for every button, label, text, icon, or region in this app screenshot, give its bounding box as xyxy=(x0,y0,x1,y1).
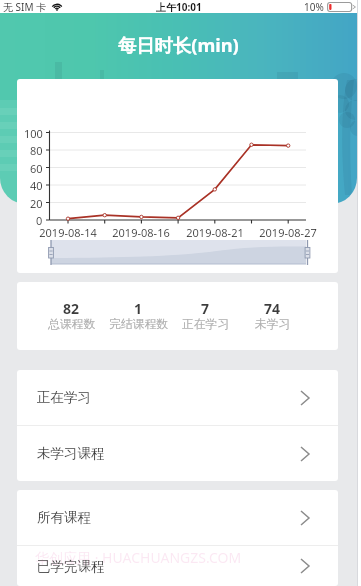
staticText: 每日时长(min) xyxy=(118,32,239,57)
button[interactable]: 正在学习 xyxy=(17,370,338,425)
staticText: 总课程数 xyxy=(48,317,96,332)
staticText: 未学习课程 xyxy=(37,445,105,462)
button[interactable]: 所有课程 xyxy=(17,490,338,545)
staticText: 所有课程 xyxy=(37,509,91,526)
staticText: 已学完课程 xyxy=(37,558,105,575)
staticText: 2019-08-27 xyxy=(259,225,317,240)
button[interactable]: 7 xyxy=(172,299,239,333)
button[interactable]: 未学习课程 xyxy=(17,426,338,481)
staticText: 华创应用 · HUACHUANGZS.COM xyxy=(35,548,242,567)
staticText: 未学习 xyxy=(255,317,291,332)
staticText: 40 xyxy=(30,178,43,193)
staticText: 74 xyxy=(264,299,281,318)
staticText: 0 xyxy=(36,213,43,228)
staticText: 正在学习 xyxy=(37,389,91,406)
button[interactable]: 1 xyxy=(105,299,172,333)
staticText: 2019-08-14 xyxy=(39,225,97,240)
staticText: 上午10:01 xyxy=(156,0,202,13)
staticText: 10% xyxy=(304,0,324,13)
staticText: 20 xyxy=(30,196,43,211)
button[interactable]: 74 xyxy=(239,299,306,333)
staticText: 7 xyxy=(201,299,210,318)
button[interactable]: 82 xyxy=(38,299,105,333)
staticText: 2019-08-16 xyxy=(112,225,170,240)
staticText: 完结课程数 xyxy=(109,317,168,332)
button[interactable]: 已学完课程 xyxy=(17,546,338,586)
staticText: 正在学习 xyxy=(182,317,230,332)
staticText: 80 xyxy=(30,143,43,158)
staticText: 60 xyxy=(30,161,43,176)
staticText: 1 xyxy=(134,299,143,318)
staticText: 100 xyxy=(24,126,43,141)
staticText: 无 SIM 卡 xyxy=(3,0,47,13)
staticText: 82 xyxy=(63,299,80,318)
staticText: 2019-08-21 xyxy=(186,225,244,240)
